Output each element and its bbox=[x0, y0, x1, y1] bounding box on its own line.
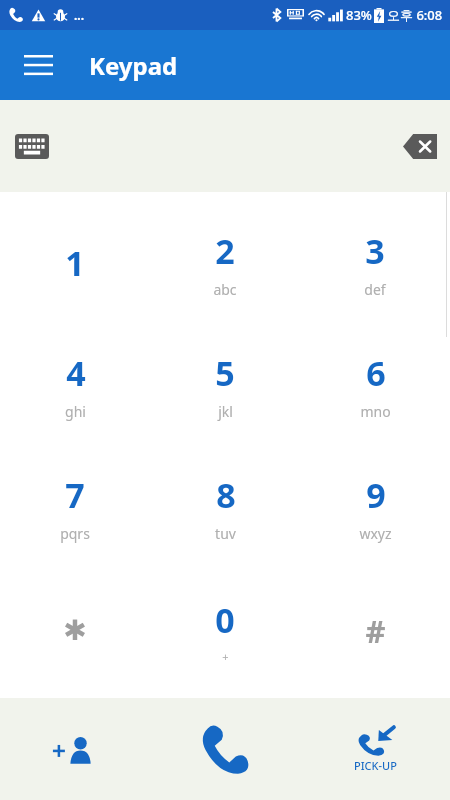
staticText: 83% bbox=[346, 6, 372, 24]
staticText: 0 bbox=[215, 597, 235, 643]
staticText: 7 bbox=[65, 472, 85, 518]
button[interactable]: # bbox=[300, 569, 450, 692]
staticText: + bbox=[222, 649, 229, 664]
button[interactable]: Call bbox=[150, 698, 300, 800]
staticText: wxyz bbox=[359, 524, 392, 543]
button[interactable]: Backspace bbox=[394, 120, 446, 172]
button[interactable]: 2 bbox=[150, 202, 300, 324]
staticText: # bbox=[365, 610, 386, 652]
button[interactable]: 9 bbox=[300, 446, 450, 569]
staticText: jkl bbox=[218, 402, 233, 421]
button[interactable]: 1 bbox=[0, 202, 150, 324]
button[interactable]: Add contact bbox=[0, 698, 150, 800]
staticText: ... bbox=[74, 7, 85, 23]
button[interactable]: 4 bbox=[0, 324, 150, 446]
staticText: mno bbox=[360, 402, 391, 421]
staticText: 9 bbox=[366, 472, 386, 518]
staticText: 1 bbox=[65, 240, 85, 286]
staticText: 2 bbox=[215, 228, 235, 274]
staticText: 4 bbox=[66, 350, 86, 396]
staticText: pqrs bbox=[60, 524, 90, 543]
staticText: 8 bbox=[216, 472, 236, 518]
button[interactable]: 0 bbox=[150, 569, 300, 692]
staticText: ✱ bbox=[63, 614, 87, 647]
staticText: PICK-UP bbox=[354, 758, 397, 773]
staticText: ghi bbox=[65, 402, 86, 421]
button[interactable]: ✱ bbox=[0, 569, 150, 692]
staticText: 오후 6:08 bbox=[387, 6, 443, 24]
staticText: def bbox=[364, 280, 386, 299]
button[interactable]: 8 bbox=[150, 446, 300, 569]
button[interactable]: 3 bbox=[300, 202, 450, 324]
button[interactable]: Open navigation menu bbox=[14, 41, 62, 89]
button[interactable]: 7 bbox=[0, 446, 150, 569]
button[interactable]: 6 bbox=[300, 324, 450, 446]
staticText: Keypad bbox=[89, 49, 178, 82]
staticText: 3 bbox=[365, 228, 385, 274]
staticText: 6 bbox=[366, 350, 386, 396]
staticText: abc bbox=[213, 280, 237, 299]
staticText: 5 bbox=[215, 350, 235, 396]
staticText: tuv bbox=[215, 524, 236, 543]
button[interactable]: Show keyboard bbox=[6, 120, 58, 172]
button[interactable]: 5 bbox=[150, 324, 300, 446]
button[interactable]: Pick-up bbox=[300, 698, 450, 800]
